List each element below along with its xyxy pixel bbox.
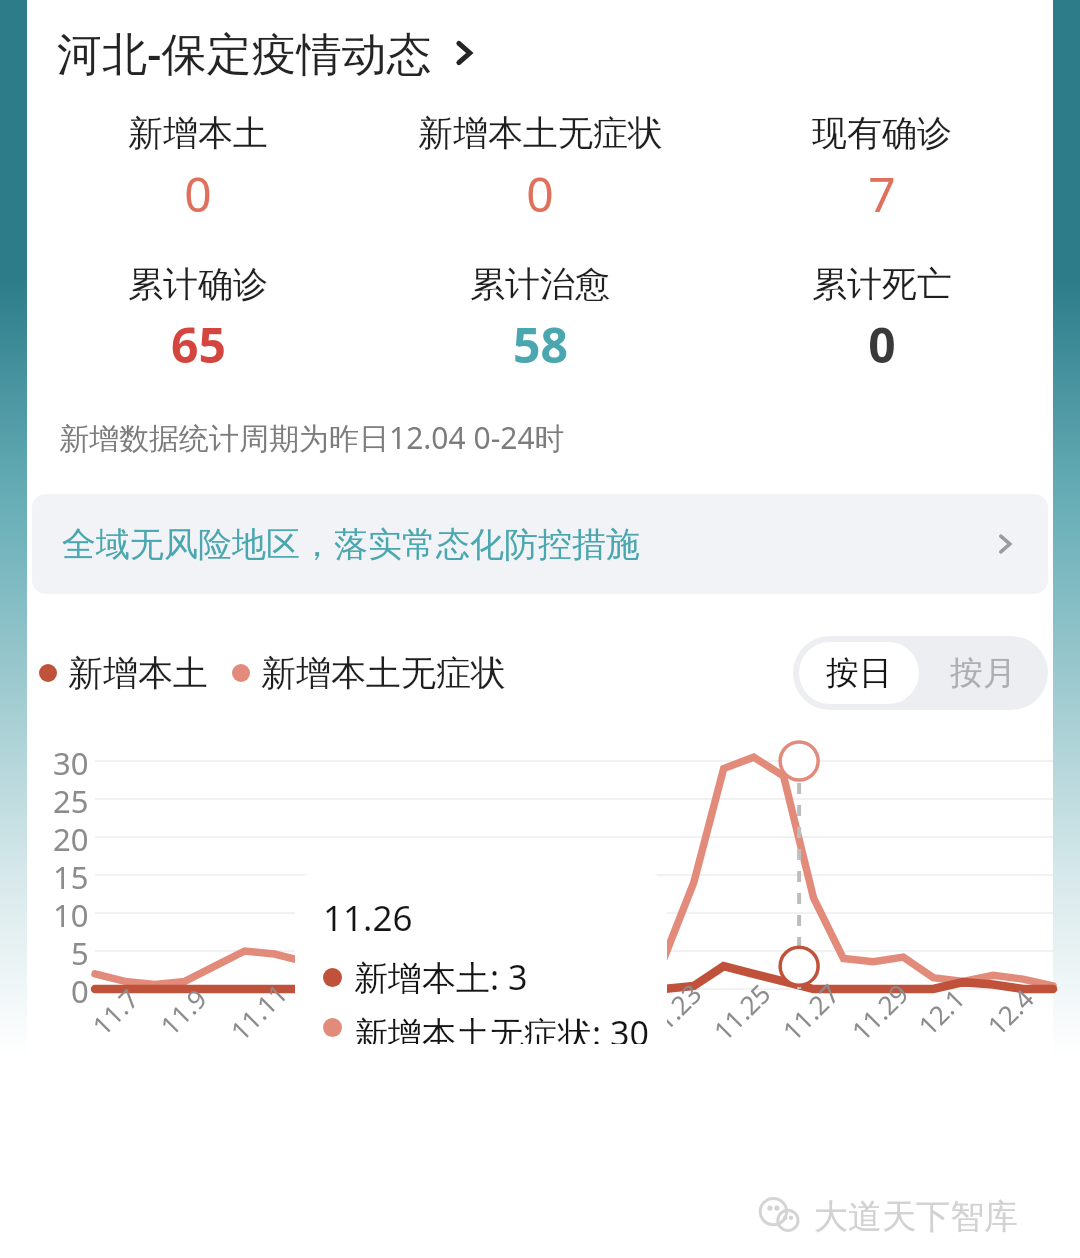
button[interactable]: 累计确诊 (27, 262, 369, 377)
button[interactable]: 河北-保定疫情动态 (57, 20, 480, 85)
staticText: 11.23 (636, 975, 708, 1047)
staticText: 全域无风险地区，落实常态化防控措施 (62, 523, 640, 566)
staticText: 11.29 (843, 975, 915, 1047)
staticText: 12.4 (979, 981, 1041, 1042)
staticText: 12.1 (910, 981, 972, 1042)
staticText: 累计死亡 (812, 262, 952, 306)
staticText: 11.17 (429, 975, 501, 1047)
staticText: 11.7 (84, 981, 146, 1042)
staticText: 新增本土无症状: 30 (354, 1010, 649, 1044)
staticText: 新增本土无症状 (418, 111, 663, 155)
staticText: 新增本土无症状 (261, 651, 506, 695)
button[interactable]: 新增本土 (27, 111, 369, 226)
staticText: 20 (53, 818, 89, 856)
staticText: 10 (53, 894, 89, 932)
button[interactable]: 累计治愈 (369, 262, 711, 377)
staticText: 新增本土 (128, 111, 268, 155)
button[interactable]: 按日 (799, 642, 919, 704)
staticText: 11.25 (705, 975, 777, 1047)
staticText: 11.11 (222, 975, 294, 1047)
button[interactable]: 全域无风险地区，落实常态化防控措施 (32, 494, 1048, 594)
staticText: 11.19 (498, 975, 570, 1047)
staticText: 11.21 (567, 975, 639, 1047)
staticText: 11.27 (774, 975, 846, 1047)
staticText: 0 (184, 161, 212, 226)
staticText: 11.26 (323, 894, 413, 942)
staticText: 15 (53, 856, 89, 894)
staticText: 0 (526, 161, 554, 226)
button[interactable]: 现有确诊 (711, 111, 1053, 226)
staticText: 河北-保定疫情动态 (57, 22, 432, 83)
staticText: 累计确诊 (128, 262, 268, 306)
staticText: 25 (53, 780, 89, 818)
button[interactable]: 累计死亡 (711, 262, 1053, 377)
staticText: 0 (868, 312, 896, 377)
other: WeChat (758, 1194, 802, 1238)
staticText: 0 (71, 970, 89, 1008)
staticText: 65 (171, 312, 226, 377)
staticText: 58 (513, 312, 568, 377)
staticText: 11.9 (152, 981, 214, 1042)
staticText: 7 (868, 161, 896, 226)
staticText: 累计治愈 (470, 262, 610, 306)
staticText: 新增数据统计周期为昨日12.04 0-24时 (59, 417, 565, 458)
staticText: 新增本土 (68, 651, 208, 695)
button[interactable]: 新增本土无症状 (369, 111, 711, 226)
staticText: 30 (53, 742, 89, 780)
staticText: 11.15 (360, 975, 432, 1047)
staticText: 现有确诊 (812, 111, 952, 155)
button[interactable]: 11.26 (295, 874, 667, 1066)
staticText: 按日 (826, 652, 892, 694)
staticText: 新增本土: 3 (354, 954, 528, 1000)
button[interactable]: 按月 (925, 642, 1041, 704)
staticText: 5 (71, 932, 89, 970)
staticText: 大道天下智库 (814, 1195, 1018, 1238)
staticText: 按月 (950, 652, 1016, 694)
staticText: 11.13 (291, 975, 363, 1047)
